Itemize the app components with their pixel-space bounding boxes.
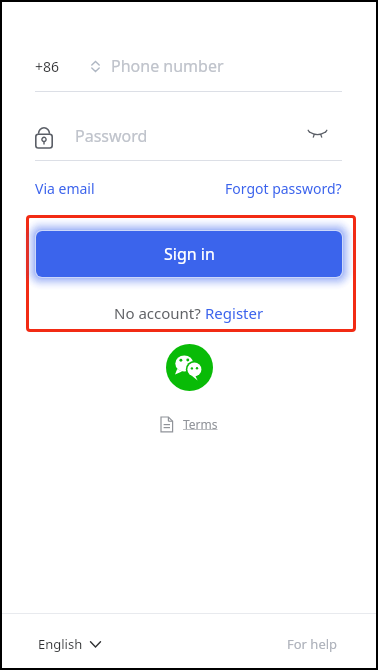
button[interactable]: English xyxy=(38,635,101,653)
button[interactable]: +86 xyxy=(35,53,342,79)
button[interactable]: Terms xyxy=(0,414,378,434)
button[interactable] xyxy=(303,126,331,146)
staticText: +86 xyxy=(35,57,60,76)
staticText: No account? xyxy=(114,303,205,323)
button[interactable]: Sign in xyxy=(36,231,342,277)
button[interactable]: Password xyxy=(35,122,285,150)
staticText: Password xyxy=(75,125,148,147)
button[interactable]: Forgot password? xyxy=(225,179,342,198)
staticText: English xyxy=(38,635,83,653)
staticText: Phone number xyxy=(111,55,224,77)
button[interactable]: For help xyxy=(287,635,338,653)
button[interactable]: Via email xyxy=(35,179,95,198)
staticText: Sign in xyxy=(164,243,215,265)
button[interactable] xyxy=(166,344,213,391)
button[interactable]: Register xyxy=(205,303,264,323)
staticText: Terms xyxy=(183,416,218,432)
